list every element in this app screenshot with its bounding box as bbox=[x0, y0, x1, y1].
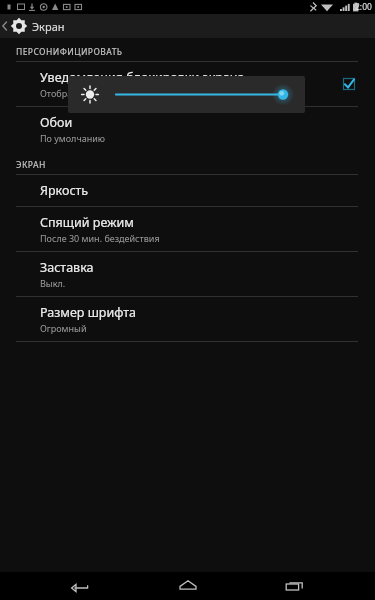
button[interactable]: Recent apps bbox=[268, 572, 322, 600]
button[interactable]: Заставка bbox=[0, 252, 375, 296]
button[interactable]: Размер шрифта bbox=[0, 297, 375, 341]
staticText: Огромный bbox=[40, 322, 87, 334]
staticText: ПЕРСОНИФИЦИРОВАТЬ bbox=[16, 46, 123, 58]
button[interactable]: Обои bbox=[0, 107, 375, 151]
staticText: Спящий режим bbox=[40, 214, 134, 231]
staticText: Отображать уведомления при блокировке эк… bbox=[40, 87, 260, 99]
staticText: Обои bbox=[40, 114, 73, 131]
staticText: Уведомления блокировки экрана bbox=[40, 69, 245, 86]
staticText: Размер шрифта bbox=[40, 304, 137, 321]
button[interactable]: Яркость bbox=[0, 175, 375, 206]
button[interactable]: Уведомления блокировки экрана bbox=[0, 62, 375, 106]
staticText: Выкл. bbox=[40, 277, 66, 289]
button[interactable] bbox=[68, 76, 305, 113]
staticText: По умолчанию bbox=[40, 132, 106, 144]
staticText: Экран bbox=[32, 19, 65, 34]
button[interactable]: Back bbox=[0, 14, 375, 38]
staticText: После 30 мин. бездействия bbox=[40, 232, 160, 244]
button[interactable]: Home bbox=[161, 572, 215, 600]
staticText: Яркость bbox=[40, 182, 89, 199]
button[interactable]: Back bbox=[53, 572, 107, 600]
staticText: 2:00 bbox=[355, 1, 372, 13]
staticText: Заставка bbox=[40, 259, 94, 276]
button[interactable]: Toggle lock screen notifications bbox=[339, 74, 359, 94]
staticText: ЭКРАН bbox=[16, 159, 46, 171]
other: Back bbox=[0, 14, 32, 38]
button[interactable]: Спящий режим bbox=[0, 207, 375, 251]
